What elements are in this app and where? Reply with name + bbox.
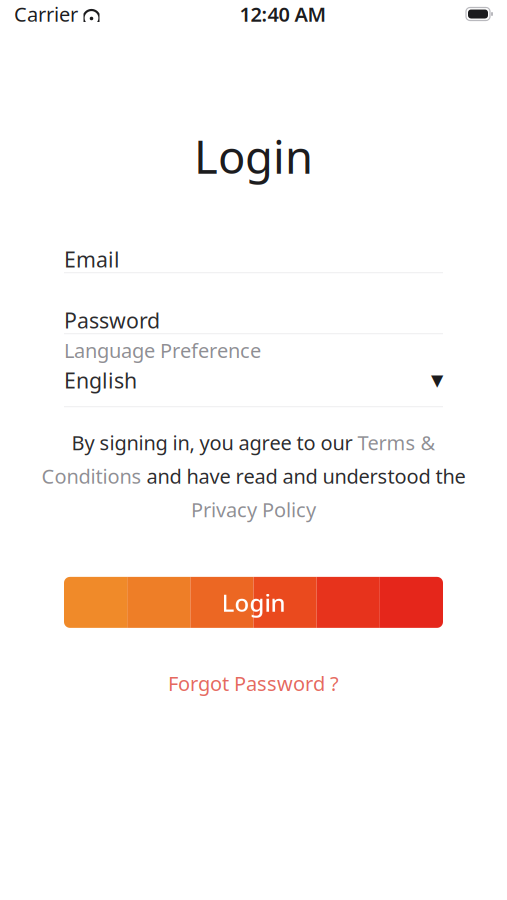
button[interactable]: Login <box>0 577 507 628</box>
staticText: By signing in, you agree to our <box>71 429 357 456</box>
staticText: Carrier <box>14 1 78 27</box>
staticText: Privacy Policy <box>191 496 316 523</box>
staticText: Conditions <box>41 463 141 489</box>
staticText: English <box>64 366 137 394</box>
button[interactable]: Forgot Password ? <box>154 664 353 702</box>
button[interactable]: English <box>64 366 443 407</box>
staticText: ▼ <box>431 371 443 389</box>
staticText: Password <box>64 306 160 334</box>
staticText: Forgot Password ? <box>168 670 339 696</box>
staticText: Language Preference <box>64 337 261 363</box>
staticText: Terms & <box>357 429 435 456</box>
staticText: Email <box>64 245 120 273</box>
staticText: Login <box>221 586 285 618</box>
staticText: and have read and understood the <box>141 463 465 489</box>
staticText: 12:40 AM <box>239 1 326 27</box>
staticText: Login <box>194 126 313 186</box>
